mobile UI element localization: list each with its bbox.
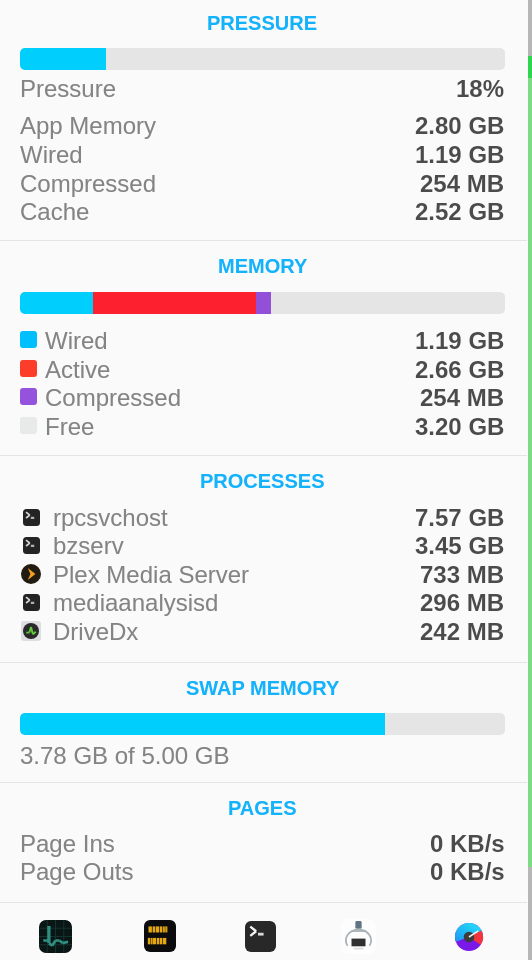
staticText: 2.66 GB xyxy=(415,356,505,383)
staticText: DriveDx xyxy=(53,618,139,645)
staticText: App Memory xyxy=(20,112,157,139)
staticText: 7.57 GB xyxy=(415,504,505,531)
staticText: 1.19 GB xyxy=(415,141,505,168)
button[interactable]: Browser xyxy=(447,915,491,959)
staticText: SWAP MEMORY xyxy=(186,677,340,699)
staticText: PAGES xyxy=(228,797,297,819)
staticText: 0 KB/s xyxy=(430,858,505,885)
staticText: 18% xyxy=(456,75,505,102)
staticText: Compressed xyxy=(20,170,157,197)
staticText: Active xyxy=(45,356,111,383)
staticText: 0 KB/s xyxy=(430,830,505,857)
staticText: 2.80 GB xyxy=(415,112,505,139)
staticText: mediaanalysisd xyxy=(53,589,219,616)
staticText: PROCESSES xyxy=(200,470,325,492)
staticText: rpcsvchost xyxy=(53,504,168,531)
staticText: Free xyxy=(45,413,95,440)
staticText: PRESSURE xyxy=(207,12,318,34)
staticText: 3.78 GB of 5.00 GB xyxy=(20,742,230,769)
button[interactable]: Terminal xyxy=(238,914,282,958)
staticText: Page Outs xyxy=(20,858,134,885)
staticText: Plex Media Server xyxy=(53,561,250,588)
staticText: 296 MB xyxy=(420,589,505,616)
staticText: Cache xyxy=(20,198,90,225)
staticText: 1.19 GB xyxy=(415,327,505,354)
staticText: 3.45 GB xyxy=(415,532,505,559)
staticText: Pressure xyxy=(20,75,117,102)
staticText: Wired xyxy=(20,141,83,168)
button[interactable]: Backup xyxy=(336,914,380,958)
staticText: bzserv xyxy=(53,532,124,559)
staticText: Wired xyxy=(45,327,108,354)
staticText: Page Ins xyxy=(20,830,115,857)
button[interactable]: Battery status xyxy=(138,914,182,958)
staticText: Compressed xyxy=(45,384,182,411)
button[interactable]: Activity Monitor xyxy=(33,914,77,958)
staticText: 254 MB xyxy=(420,384,505,411)
staticText: 242 MB xyxy=(420,618,505,645)
staticText: 3.20 GB xyxy=(415,413,505,440)
staticText: 2.52 GB xyxy=(415,198,505,225)
staticText: MEMORY xyxy=(218,255,308,277)
staticText: 733 MB xyxy=(420,561,505,588)
staticText: 254 MB xyxy=(420,170,505,197)
